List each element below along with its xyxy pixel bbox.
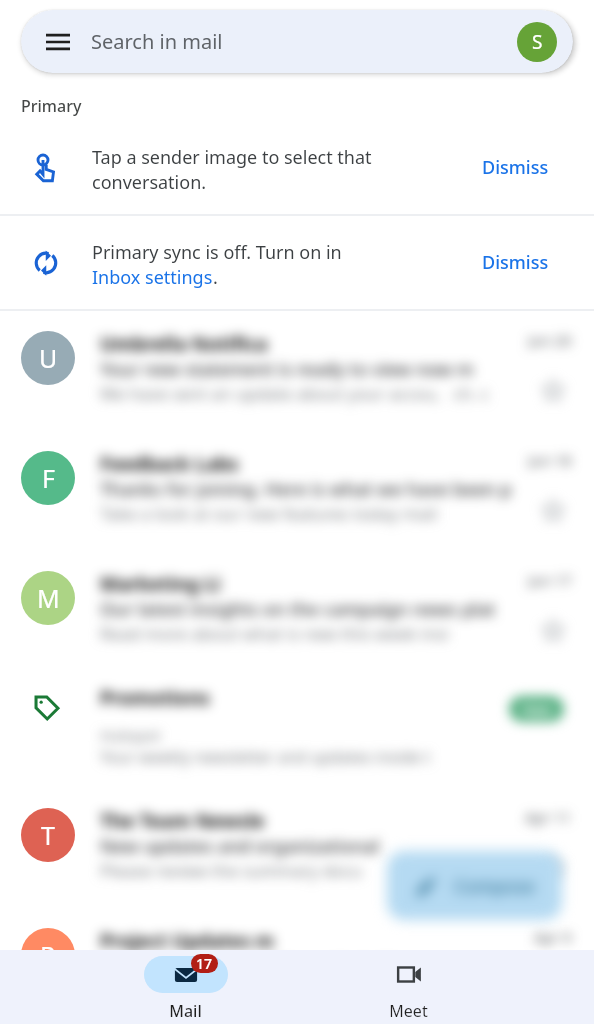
button[interactable]: Compose [387, 851, 562, 920]
staticText: S [532, 29, 543, 55]
other: Mail [172, 961, 200, 989]
staticText: 17 [196, 954, 213, 973]
staticText: We have sent an update about your accou,… [100, 382, 490, 405]
button[interactable]: Promotions [0, 671, 594, 788]
staticText: T [41, 818, 55, 852]
staticText: Meet [389, 1000, 428, 1022]
button[interactable]: Account [517, 22, 557, 62]
staticText: . [213, 265, 218, 290]
staticText: U [39, 341, 58, 375]
button[interactable]: M [0, 551, 594, 671]
staticText: Search in mail [91, 28, 223, 55]
staticText: Marketing Li [100, 571, 221, 597]
staticText: Jun 18 [528, 450, 572, 470]
button[interactable]: Sync [0, 216, 594, 309]
staticText: Feedback Labs [100, 451, 239, 477]
staticText: Your weekly newsletter and updates insid… [100, 746, 431, 768]
staticText: Inbox settings [92, 265, 213, 290]
staticText: Please review the summary docu [100, 859, 363, 882]
staticText: P [40, 938, 56, 972]
staticText: Jun 20 [528, 330, 572, 350]
button[interactable]: U [0, 311, 594, 431]
button[interactable]: Star [540, 498, 574, 532]
staticText: Project Updates m [100, 928, 275, 954]
staticText: Weekly summary of the project plan ev [100, 954, 435, 979]
staticText: Read more about what is new this week in… [100, 622, 449, 645]
button[interactable]: Star [540, 378, 574, 412]
staticText: F [42, 461, 55, 495]
button[interactable]: F [0, 431, 594, 551]
staticText: Look at the latest report for more [100, 979, 367, 1002]
staticText: Mail [169, 1000, 202, 1022]
button[interactable]: Dismiss [482, 250, 549, 275]
staticText: conversation. [92, 170, 207, 195]
other: Sync [31, 248, 61, 278]
staticText: M [37, 581, 60, 615]
staticText: Primary sync is off. Turn on in [92, 240, 342, 265]
other: Meet [395, 960, 424, 989]
other: Tip [31, 153, 61, 183]
staticText: Apr 11 [525, 807, 572, 827]
staticText: Our latest insights on the campaign news… [100, 597, 496, 622]
staticText: The Team Newsle [100, 808, 265, 834]
button[interactable]: Dismiss [482, 155, 549, 180]
button[interactable]: T [0, 788, 594, 908]
button[interactable]: Meet [297, 950, 520, 1024]
button[interactable]: Inbox settings [92, 265, 213, 290]
staticText: New updates and organizational [100, 834, 380, 859]
staticText: Take a look at our new features today ma… [100, 502, 438, 525]
button[interactable]: P [0, 908, 594, 1024]
staticText: Jun 17 [528, 570, 572, 590]
button[interactable]: Open navigation menu [46, 30, 70, 54]
staticText: Tap a sender image to select that [92, 145, 372, 170]
staticText: Primary [21, 95, 82, 117]
staticText: Dismiss [482, 155, 549, 180]
staticText: New [522, 700, 552, 719]
button[interactable]: Tip [0, 121, 594, 214]
staticText: Thanks for joining. Here is what we have… [100, 477, 512, 502]
button[interactable]: Star [540, 618, 574, 652]
staticText: Promotions [100, 685, 210, 711]
staticText: Dismiss [482, 250, 549, 275]
staticText: Your new statement is ready to view now … [100, 357, 474, 382]
staticText: Hubspot [100, 725, 161, 745]
button[interactable]: Star [540, 855, 574, 889]
staticText: Compose [454, 874, 535, 899]
button[interactable]: Open navigation menu [21, 10, 573, 73]
button[interactable]: Mail [74, 950, 297, 1024]
staticText: Apr 9 [534, 927, 572, 947]
staticText: Umbrella Notifica [100, 331, 268, 357]
